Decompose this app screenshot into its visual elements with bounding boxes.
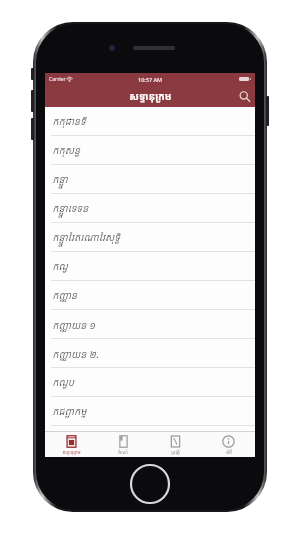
button[interactable]: កកុសន្ធ	[45, 136, 255, 165]
staticText: កញ្ញាយន ១	[53, 318, 96, 332]
button[interactable]: កន្ឆ្នា	[45, 165, 255, 194]
button[interactable]: កញ្ញាន	[45, 281, 255, 310]
staticText: សទ្ទានុក្រម	[129, 89, 172, 103]
button[interactable]: កញ្ញាយន ១	[45, 310, 255, 339]
staticText: កន្ឆ្នាវៃតរណាវៃសុទ្ធិ	[53, 232, 121, 244]
button[interactable]: កន្ឆ្នាវៃតរណាវៃសុទ្ធិ	[45, 223, 255, 252]
staticText: កញ្ញាយន ២.	[53, 347, 100, 361]
staticText: កជព្ឆាកម្ម	[53, 406, 88, 418]
button[interactable]: កកុជានទី	[45, 107, 255, 136]
staticText: កកុសន្ធ	[53, 145, 81, 157]
staticText: កកុជានទី	[53, 116, 87, 128]
button[interactable]: កឍ្វ	[45, 252, 255, 281]
staticText: ចំណាំ	[118, 449, 128, 455]
staticText: ប្រវត្តិ	[171, 449, 180, 455]
staticText: កឍ្វ	[53, 261, 69, 273]
staticText: កន្ឆ្នាទេទន	[53, 203, 89, 215]
button[interactable]: កន្ឆ្នាទេទន	[45, 194, 255, 223]
button[interactable]: សទ្ទានុក្រម	[45, 432, 97, 457]
button[interactable]: កឍ្វប	[45, 368, 255, 397]
button[interactable]: ចំណាំ	[97, 432, 149, 457]
button[interactable]: កញ្ញាយន ២.	[45, 339, 255, 368]
button[interactable]: អំពី	[202, 432, 255, 457]
staticText: កន្ឆ្នា	[53, 174, 69, 186]
staticText: សទ្ទានុក្រម	[62, 449, 81, 455]
button[interactable]: កជព្ឆាកម្ម	[45, 397, 255, 426]
button[interactable]: ប្រវត្តិ	[149, 432, 202, 457]
staticText: Carrier	[49, 76, 66, 83]
button[interactable]: Search	[233, 85, 255, 107]
staticText: កឍ្វប	[53, 377, 75, 389]
staticText: កញ្ញាន	[53, 290, 78, 302]
staticText: 10:57 AM	[138, 76, 163, 83]
staticText: អំពី	[226, 449, 232, 455]
